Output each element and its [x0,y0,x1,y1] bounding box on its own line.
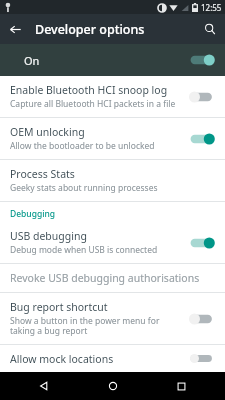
staticText: Allow the bootloader to be unlocked [10,140,155,152]
button[interactable]: Recent apps [156,372,206,400]
button[interactable]: Enable Bluetooth HCI snoop log [0,76,225,117]
button[interactable]: On [0,44,225,76]
staticText: USB debugging [10,229,87,243]
button[interactable]: Toggle on [189,52,215,68]
button[interactable]: Toggle off [189,311,215,327]
staticText: Process Stats [10,167,75,181]
staticText: Capture all Bluetooth HCI packets in a f… [10,98,176,110]
button[interactable]: Back [19,372,69,400]
button[interactable]: Home [88,372,138,400]
staticText: Developer options [35,21,145,38]
staticText: OEM unlocking [10,125,85,139]
button[interactable]: Toggle off [189,89,215,105]
staticText: Debug mode when USB is connected [10,244,158,256]
button[interactable]: Back [0,14,30,44]
staticText: Enable Bluetooth HCI snoop log [10,83,168,97]
button[interactable]: Revoke USB debugging authorisations [0,264,225,292]
staticText: Show a button in the power menu for taki… [10,315,183,337]
button[interactable]: Allow mock locations [0,345,225,372]
button[interactable]: Process Stats [0,160,225,201]
button[interactable]: USB debugging [0,222,225,263]
staticText: Bug report shortcut [10,300,108,314]
button[interactable]: Toggle on [189,235,215,251]
button[interactable]: OEM unlocking [0,118,225,159]
button[interactable]: Toggle off [189,352,215,365]
staticText: Debugging [10,208,56,220]
staticText: Geeky stats about running processes [10,182,158,194]
staticText: 12:55 [201,2,222,13]
staticText: Allow mock locations [10,352,114,365]
staticText: On [24,53,40,68]
button[interactable]: Toggle on [189,131,215,147]
button[interactable]: Bug report shortcut [0,293,225,344]
staticText: Revoke USB debugging authorisations [10,271,200,285]
button[interactable]: Search [195,14,225,44]
